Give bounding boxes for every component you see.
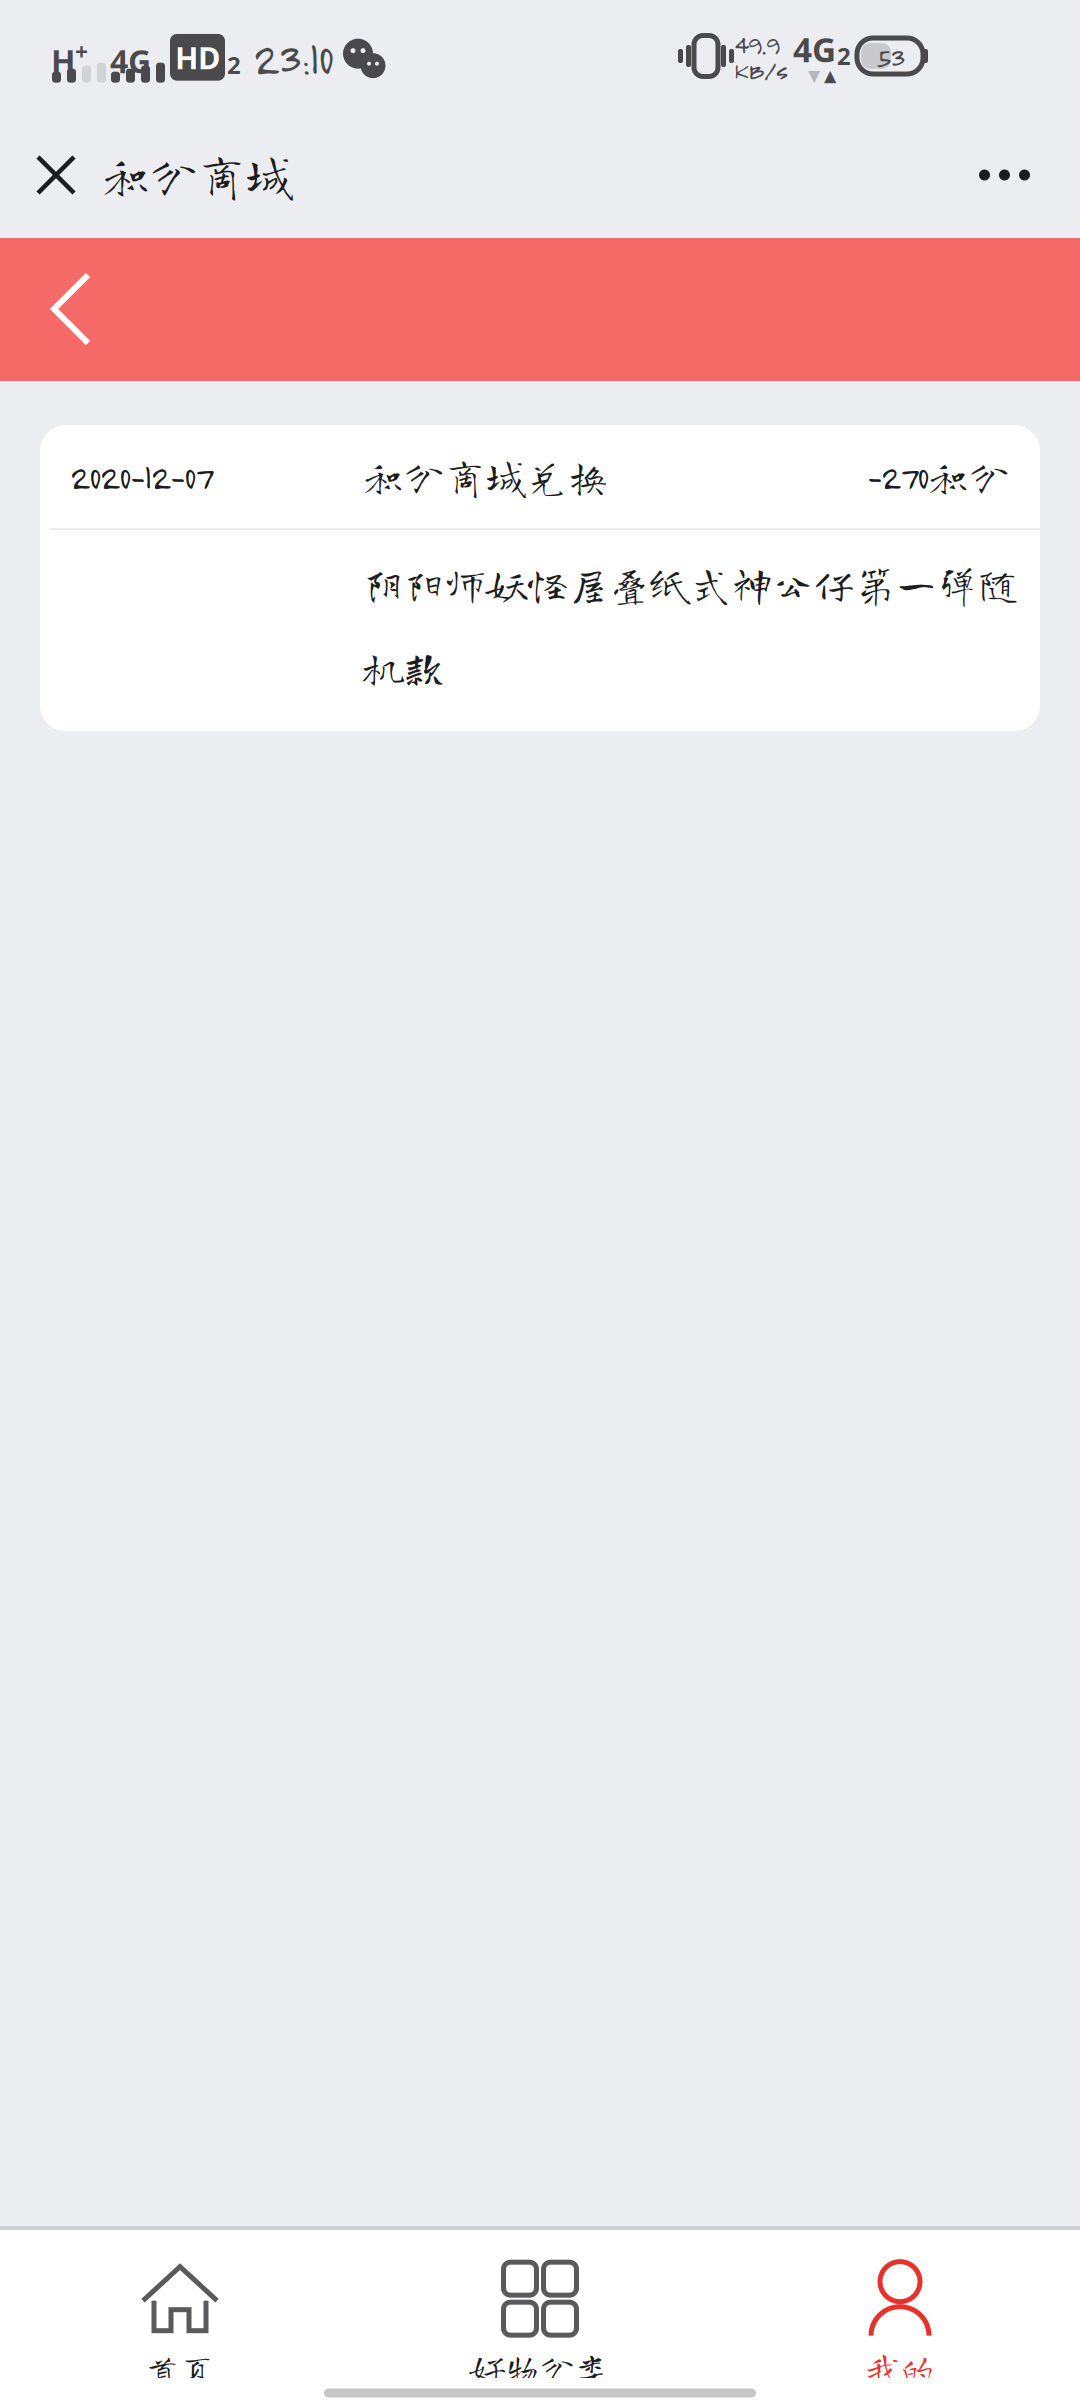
staticText: G [128,40,151,82]
staticText: 好物分类 [470,2351,610,2385]
staticText: 2 [227,49,241,81]
staticText: ▲ [824,67,836,85]
staticText: 2 [837,40,851,72]
staticText: 23:10 [253,31,332,85]
button[interactable]: 我的 [720,2223,1080,2385]
staticText: -270积分 [867,456,1010,497]
staticText: ▼ [808,67,820,85]
staticText: 4G [793,27,836,72]
staticText: 阴阳师妖怪屋叠纸式神公仔第一弹随机款 [363,564,1019,687]
staticText: 积分商城 [102,151,294,199]
button[interactable]: Back [0,238,122,381]
button[interactable]: More [939,141,1080,208]
button[interactable]: 首页 [0,2223,360,2385]
staticText: 首页 [145,2351,215,2385]
staticText: 我的 [865,2351,935,2385]
staticText: KB/s [734,53,787,85]
staticText: 49.9 [734,27,779,59]
staticText: 4 [110,40,128,82]
staticText: 2020-12-07 [70,456,212,497]
staticText: + [75,37,88,67]
button[interactable]: Close [0,133,294,217]
staticText: H [51,40,75,82]
staticText: 积分商城兑换 [363,456,609,497]
staticText: 53 [876,40,904,74]
staticText: HD [175,37,220,78]
button[interactable]: 好物分类 [360,2223,720,2385]
